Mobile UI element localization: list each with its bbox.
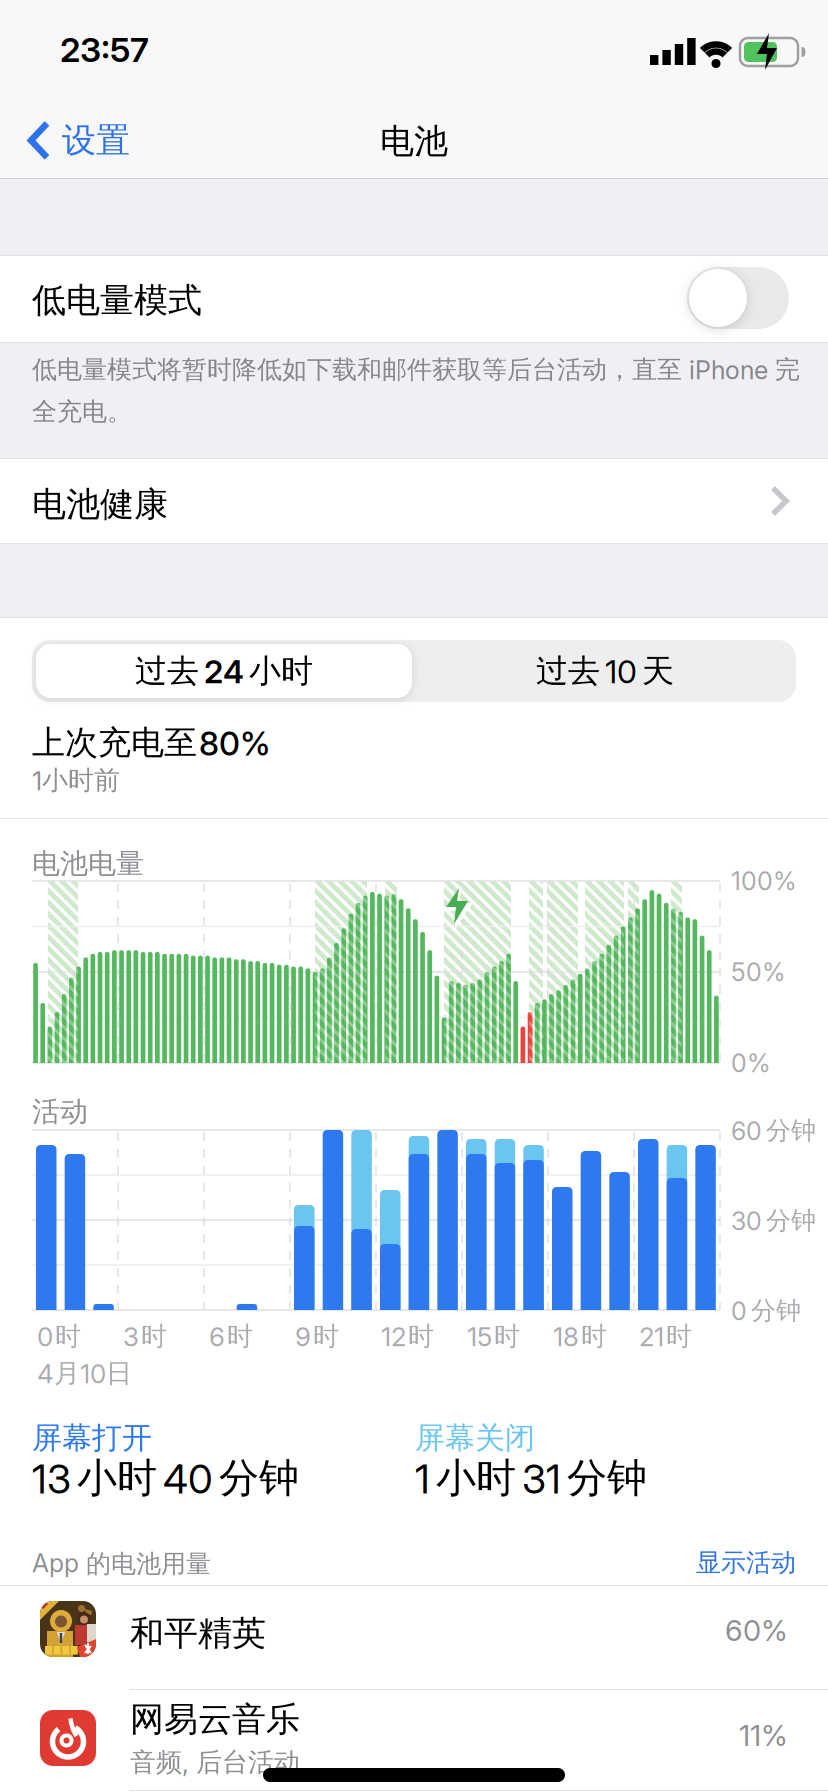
staticText: 设置 xyxy=(62,119,130,162)
staticText: 上次充电至 80% xyxy=(32,722,270,764)
staticText: 和平精英 xyxy=(130,1612,266,1655)
staticText: 网易云音乐 xyxy=(130,1698,300,1741)
staticText: 3 时 xyxy=(123,1320,167,1353)
staticText: 15 时 xyxy=(467,1320,520,1353)
button[interactable]: 过去 24 小时 xyxy=(36,644,412,698)
staticText: 1 小时 31 分钟 xyxy=(415,1453,647,1503)
staticText: 13 小时 40 分钟 xyxy=(32,1453,299,1503)
button[interactable]: 返回设置 xyxy=(28,119,130,162)
staticText: 低电量模式 xyxy=(32,279,202,322)
staticText: 电池健康 xyxy=(32,483,168,526)
staticText: 0 时 xyxy=(37,1320,81,1353)
staticText: 屏幕打开 xyxy=(32,1419,152,1457)
staticText: 电池 xyxy=(380,120,448,163)
staticText: 11% xyxy=(739,1718,788,1753)
staticText: 过去 10 天 xyxy=(536,651,674,691)
button[interactable]: 过去 10 天 xyxy=(414,640,796,702)
staticText: 18 时 xyxy=(553,1320,607,1353)
staticText: 60 分钟 xyxy=(731,1115,816,1146)
button[interactable]: 电池健康 xyxy=(0,459,828,543)
staticText: 1小时前 xyxy=(32,764,120,797)
staticText: 0 分钟 xyxy=(731,1295,801,1326)
staticText: 12 时 xyxy=(381,1320,434,1353)
staticText: 低电量模式将暂时降低如下载和邮件获取等后台活动，直至 iPhone 完 xyxy=(32,354,800,385)
staticText: 4月10日 xyxy=(37,1357,132,1390)
staticText: 30 分钟 xyxy=(731,1205,816,1236)
staticText: 60% xyxy=(725,1613,788,1648)
button[interactable]: 显示活动 xyxy=(696,1547,796,1578)
staticText: 100% xyxy=(731,866,797,896)
staticText: 0% xyxy=(731,1048,771,1078)
staticText: 50% xyxy=(731,957,786,987)
button[interactable]: 低电量模式开关 xyxy=(687,267,789,329)
staticText: 活动 xyxy=(32,1094,88,1129)
staticText: 音频, 后台活动 xyxy=(130,1746,300,1779)
staticText: 9 时 xyxy=(295,1320,339,1353)
staticText: 显示活动 xyxy=(696,1547,796,1578)
staticText: 23:57 xyxy=(60,29,149,70)
button[interactable]: 和平精英 xyxy=(0,1586,828,1689)
button[interactable]: 网易云音乐 xyxy=(0,1690,828,1792)
staticText: 屏幕关闭 xyxy=(415,1419,535,1457)
staticText: 6 时 xyxy=(209,1320,253,1353)
staticText: 电池电量 xyxy=(32,846,144,881)
staticText: 21 时 xyxy=(639,1320,692,1353)
staticText: 过去 24 小时 xyxy=(135,651,313,691)
staticText: 全充电。 xyxy=(32,396,132,427)
staticText: App 的电池用量 xyxy=(32,1548,211,1580)
